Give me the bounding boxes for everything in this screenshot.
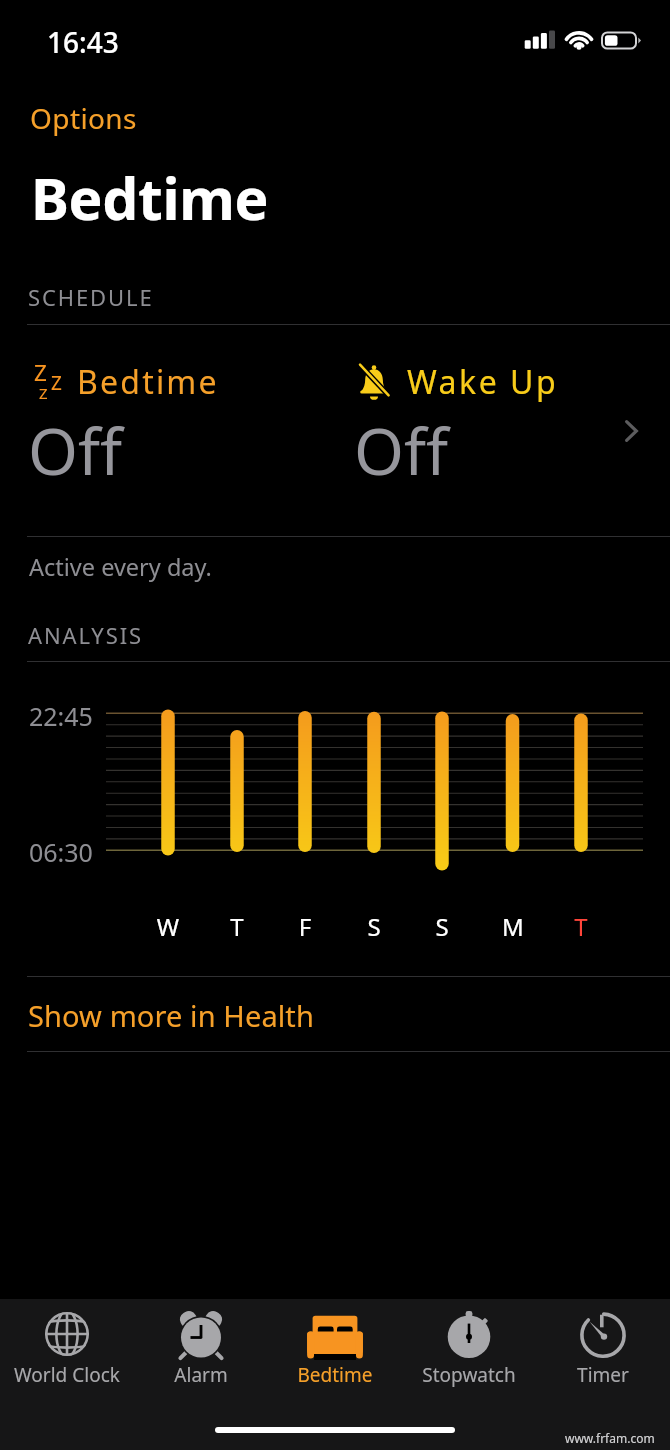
staticText: F: [285, 910, 325, 943]
staticText: Alarm: [134, 1362, 268, 1388]
button[interactable]: Z: [0, 325, 670, 536]
staticText: 16:43: [47, 23, 119, 61]
staticText: Bedtime: [77, 360, 219, 404]
staticText: Bedtime: [268, 1362, 402, 1388]
staticText: SCHEDULE: [28, 282, 154, 312]
staticText: Off: [28, 407, 123, 494]
staticText: T: [217, 910, 257, 943]
button[interactable]: World Clock: [0, 1299, 134, 1407]
staticText: Z: [34, 357, 47, 388]
staticText: ANALYSIS: [28, 620, 143, 650]
staticText: Show more in Health: [28, 996, 314, 1035]
staticText: Stopwatch: [402, 1362, 536, 1388]
button[interactable]: Timer: [536, 1299, 670, 1407]
staticText: Off: [354, 407, 449, 494]
staticText: W: [148, 910, 188, 943]
button[interactable]: Show more in Health: [0, 977, 670, 1051]
staticText: 06:30: [29, 835, 93, 869]
staticText: Active every day.: [29, 551, 212, 583]
staticText: S: [354, 910, 394, 943]
staticText: M: [493, 910, 533, 943]
staticText: 22:45: [29, 699, 93, 733]
staticText: Bedtime: [31, 159, 269, 237]
button[interactable]: Stopwatch: [402, 1299, 536, 1407]
staticText: T: [561, 910, 601, 943]
staticText: www.frfam.com: [565, 1430, 655, 1446]
staticText: Options: [30, 99, 137, 137]
staticText: Timer: [536, 1362, 670, 1388]
button[interactable]: Options: [0, 88, 670, 144]
button[interactable]: Alarm: [134, 1299, 268, 1407]
staticText: Z: [51, 370, 62, 396]
button[interactable]: Bedtime: [268, 1299, 402, 1407]
staticText: World Clock: [0, 1362, 134, 1388]
staticText: Wake Up: [407, 360, 559, 404]
staticText: Z: [39, 383, 48, 403]
staticText: S: [422, 910, 462, 943]
